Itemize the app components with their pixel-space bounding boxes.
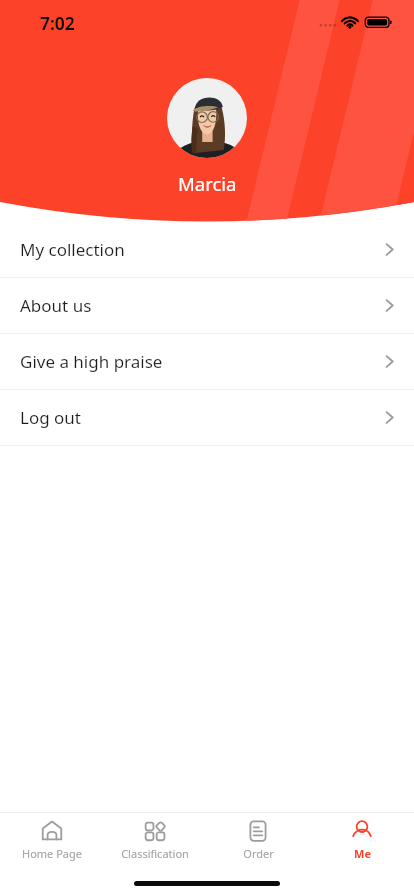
staticText: Order — [243, 846, 274, 861]
staticText: About us — [20, 294, 92, 317]
staticText: Classification — [121, 846, 189, 861]
staticText: Home Page — [22, 846, 82, 861]
staticText: 7:02 — [40, 11, 75, 35]
button[interactable]: Home Page — [0, 813, 103, 867]
staticText: Log out — [20, 406, 81, 429]
staticText: Give a high praise — [20, 350, 163, 373]
staticText: Marcia — [178, 171, 237, 196]
button[interactable]: Log out — [0, 390, 414, 445]
button[interactable]: Give a high praise — [0, 334, 414, 389]
staticText: Me — [354, 846, 371, 861]
staticText: My collection — [20, 238, 125, 261]
button[interactable]: Order — [206, 813, 310, 867]
button[interactable]: Me — [310, 813, 414, 867]
button[interactable]: Classification — [103, 813, 206, 867]
button[interactable]: My collection — [0, 222, 414, 277]
button[interactable]: About us — [0, 278, 414, 333]
